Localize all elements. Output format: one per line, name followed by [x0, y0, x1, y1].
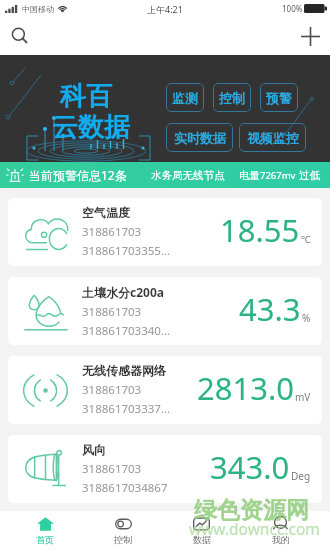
- button[interactable]: Search: [0, 17, 40, 55]
- staticText: 科百: [60, 80, 112, 113]
- staticText: 电量: [239, 169, 260, 182]
- staticText: 视频监控: [247, 130, 299, 146]
- button[interactable]: Add: [290, 17, 330, 55]
- button[interactable]: 控制: [213, 83, 251, 112]
- staticText: 控制: [114, 534, 132, 545]
- button[interactable]: 当前预警信息12条: [0, 162, 330, 188]
- button[interactable]: 视频监控: [239, 123, 306, 152]
- staticText: 绿色资源网: [194, 496, 309, 525]
- staticText: 实时数据: [174, 130, 226, 146]
- button[interactable]: 空气温度: [8, 198, 322, 266]
- button[interactable]: 无线传感器网络: [8, 356, 322, 424]
- staticText: 过低: [299, 169, 320, 182]
- staticText: ℃: [301, 232, 311, 246]
- staticText: 中国移动: [22, 4, 54, 14]
- staticText: 318861703: [82, 382, 142, 398]
- staticText: 318861703: [82, 304, 142, 320]
- staticText: 我的: [272, 534, 290, 545]
- staticText: 风向: [82, 442, 106, 457]
- staticText: 控制: [219, 90, 245, 106]
- staticText: 100%: [282, 3, 303, 14]
- staticText: www.downcc.com: [189, 518, 320, 539]
- staticText: 数据: [193, 534, 211, 545]
- button[interactable]: 预警: [260, 83, 298, 112]
- staticText: %: [302, 311, 311, 325]
- staticText: 土壤水分c200a: [82, 284, 164, 300]
- staticText: 318861703337...: [82, 401, 171, 417]
- button[interactable]: 首页: [6, 511, 84, 550]
- staticText: Deg: [291, 469, 311, 483]
- staticText: 318861703355...: [82, 243, 171, 259]
- staticText: 监测: [172, 90, 198, 106]
- button[interactable]: 我的: [241, 511, 320, 550]
- staticText: 空气温度: [82, 205, 130, 220]
- staticText: 318861703: [82, 461, 142, 477]
- staticText: mV: [295, 390, 311, 404]
- staticText: 318861703: [82, 224, 142, 240]
- staticText: 18.55: [220, 209, 300, 251]
- button[interactable]: 监测: [166, 83, 204, 112]
- staticText: 2813.0: [197, 367, 294, 409]
- staticText: 343.0: [210, 446, 290, 488]
- staticText: 无线传感器网络: [82, 363, 166, 378]
- button[interactable]: 土壤水分c200a: [8, 277, 322, 345]
- staticText: 3188617034867: [82, 480, 168, 496]
- staticText: 云数据: [52, 111, 130, 144]
- staticText: 水务局无线节点: [151, 169, 225, 182]
- button[interactable]: 风向: [8, 435, 322, 503]
- staticText: 43.3: [239, 288, 301, 330]
- staticText: 当前预警信息12条: [29, 167, 127, 183]
- staticText: 318861703340...: [82, 323, 171, 339]
- button[interactable]: 数据: [162, 511, 241, 550]
- staticText: 7267mv: [260, 169, 296, 182]
- staticText: 首页: [36, 534, 54, 545]
- staticText: 上午4:21: [147, 3, 183, 15]
- staticText: 预警: [266, 90, 292, 106]
- button[interactable]: 控制: [84, 511, 162, 550]
- button[interactable]: 实时数据: [166, 123, 233, 152]
